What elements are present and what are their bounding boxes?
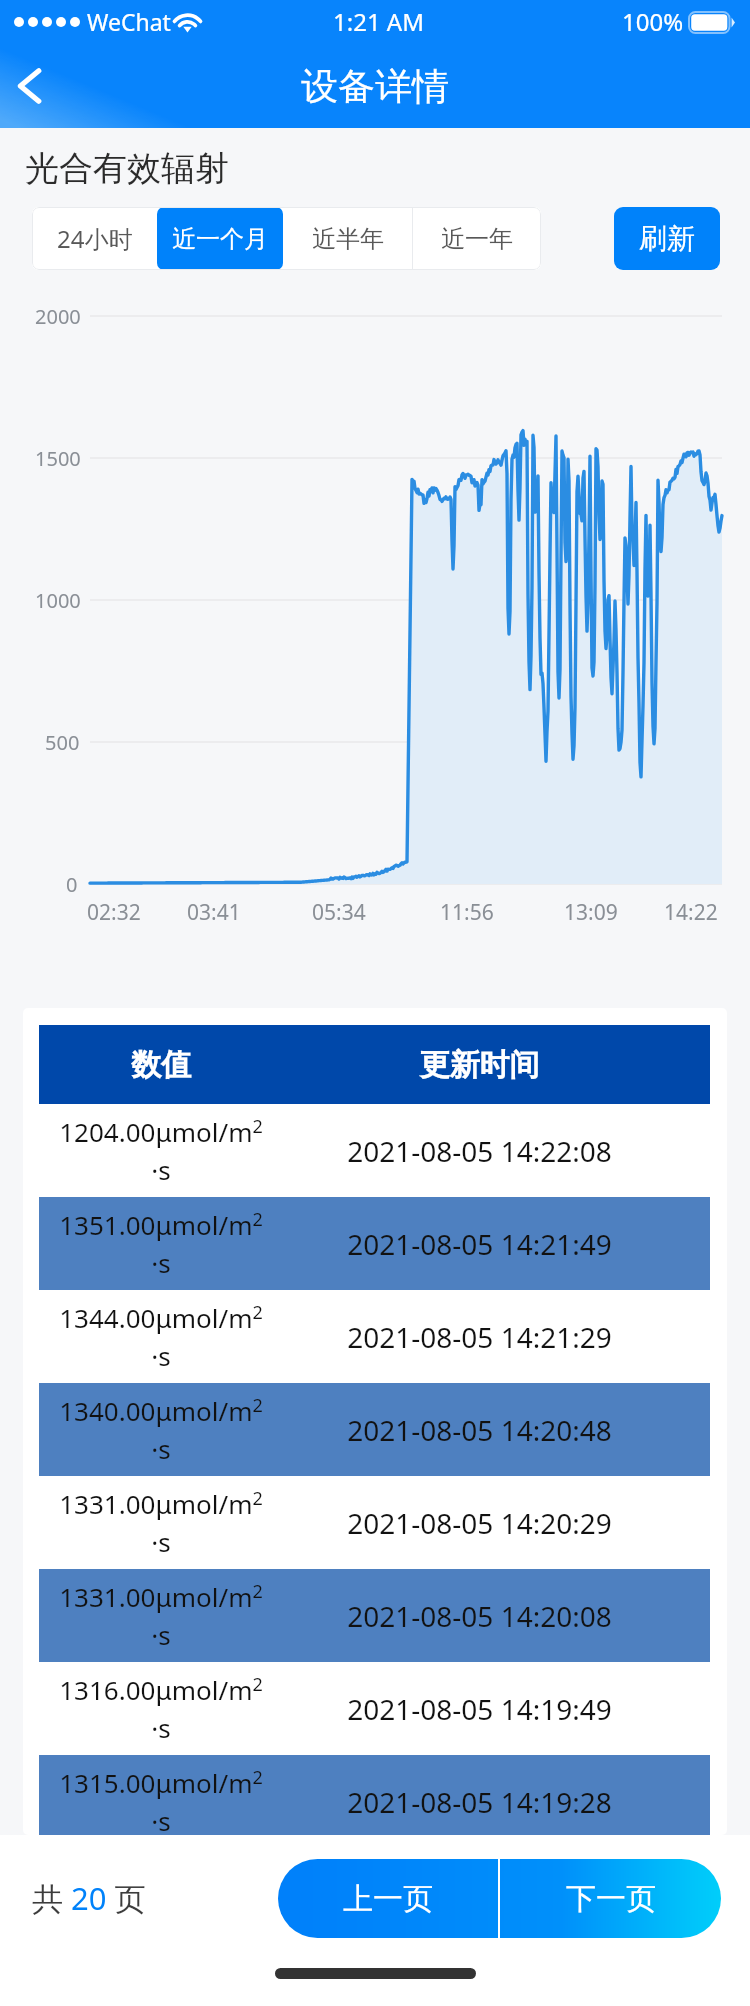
staticText: 设备详情 [301,63,449,110]
staticText: 光合有效辐射 [25,147,229,190]
staticText: 11:56 [440,898,494,927]
staticText: 1:21 AM [333,5,424,38]
staticText: 1316.00μmol/m2 ·s [59,1672,263,1745]
staticText: 1331.00μmol/m2 ·s [59,1579,263,1652]
staticText: 2021-08-05 14:19:28 [266,1783,693,1821]
button[interactable]: 刷新 [614,207,720,270]
staticText: 下一页 [566,1880,656,1918]
button[interactable]: 下一页 [500,1859,721,1938]
staticText: 1331.00μmol/m2 ·s [59,1486,263,1559]
staticText: 刷新 [639,221,695,256]
staticText: 更新时间 [266,1046,693,1084]
staticText: 13:09 [564,898,618,927]
staticText: 数值 [39,1046,283,1084]
staticText: 2021-08-05 14:21:49 [266,1225,693,1263]
staticText: 03:41 [187,898,241,927]
staticText: 近一年 [441,224,513,254]
staticText: 2021-08-05 14:20:48 [266,1411,693,1449]
staticText: 100% [622,5,684,38]
staticText: 1000 [35,587,81,614]
staticText: WeChat [87,6,171,37]
staticText: 0 [66,871,78,898]
staticText: 1351.00μmol/m2 ·s [59,1207,263,1280]
staticText: 500 [45,729,80,756]
button[interactable]: 1316.00μmol/m2 ·s [39,1662,710,1755]
button[interactable]: 1315.00μmol/m2 ·s [39,1755,710,1835]
staticText: 1500 [35,445,81,472]
staticText: 共 20 页 [32,1877,146,1919]
staticText: 02:32 [87,898,141,927]
staticText: 2021-08-05 14:22:08 [266,1132,693,1170]
staticText: 1204.00μmol/m2 ·s [59,1114,263,1187]
button[interactable]: 近半年 [283,207,412,270]
button[interactable]: 近一个月 [157,207,283,270]
staticText: 1315.00μmol/m2 ·s [59,1765,263,1835]
staticText: 1340.00μmol/m2 ·s [59,1393,263,1466]
staticText: 近半年 [312,224,384,254]
staticText: 2000 [35,303,81,330]
button[interactable]: 上一页 [278,1859,498,1938]
button[interactable]: 1344.00μmol/m2 ·s [39,1290,710,1383]
button[interactable]: 1340.00μmol/m2 ·s [39,1383,710,1476]
button[interactable]: 1204.00μmol/m2 ·s [39,1104,710,1197]
button[interactable]: 1331.00μmol/m2 ·s [39,1569,710,1662]
button[interactable]: 共 20 页 [32,1877,146,1919]
staticText: 2021-08-05 14:20:08 [266,1597,693,1635]
staticText: 上一页 [343,1880,433,1918]
button[interactable]: 1331.00μmol/m2 ·s [39,1476,710,1569]
button[interactable]: 1351.00μmol/m2 ·s [39,1197,710,1290]
staticText: 2021-08-05 14:19:49 [266,1690,693,1728]
button[interactable]: 24小时 [32,207,157,270]
staticText: 24小时 [57,222,133,255]
staticText: 近一个月 [172,224,268,254]
staticText: 14:22 [664,898,718,927]
staticText: 05:34 [312,898,366,927]
staticText: 1344.00μmol/m2 ·s [59,1300,263,1373]
button[interactable]: Back [0,56,60,116]
staticText: 2021-08-05 14:20:29 [266,1504,693,1542]
button[interactable]: 近一年 [413,207,541,270]
staticText: 2021-08-05 14:21:29 [266,1318,693,1356]
